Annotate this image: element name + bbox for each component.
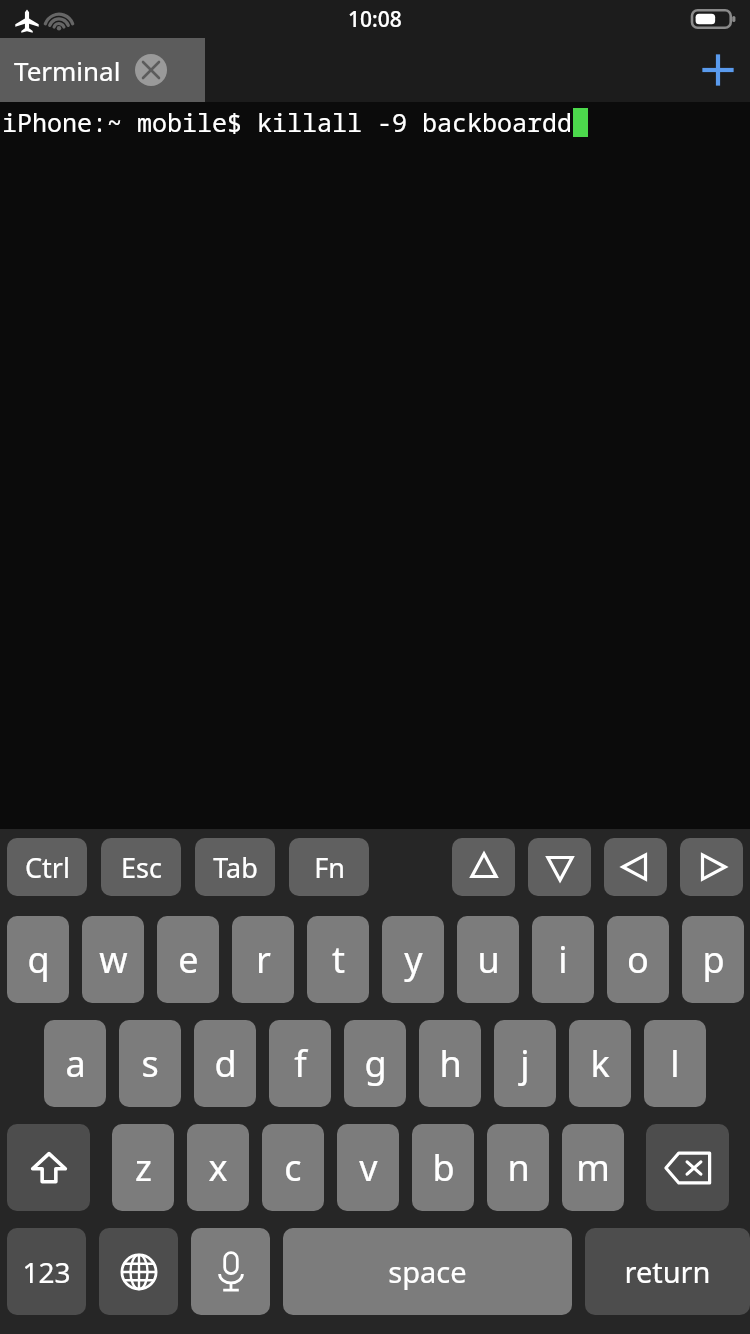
button[interactable]: m (562, 1124, 624, 1211)
staticText: iPhone:~ mobile$ killall -9 backboardd (2, 105, 573, 139)
button[interactable]: r (232, 916, 294, 1003)
button[interactable]: d (194, 1020, 256, 1107)
button[interactable]: New tab (686, 38, 750, 102)
staticText: s (141, 1039, 159, 1088)
staticText: p (702, 935, 725, 984)
button[interactable]: a (44, 1020, 106, 1107)
staticText: y (404, 935, 423, 984)
staticText: m (576, 1143, 610, 1192)
staticText: a (65, 1039, 86, 1088)
button[interactable]: l (644, 1020, 706, 1107)
button[interactable]: Dictation (191, 1228, 270, 1315)
button[interactable]: i (532, 916, 594, 1003)
button[interactable]: Arrow left (604, 838, 667, 896)
button[interactable]: w (82, 916, 144, 1003)
button[interactable]: y (382, 916, 444, 1003)
button[interactable]: Switch keyboard (99, 1228, 178, 1315)
button[interactable]: h (419, 1020, 481, 1107)
button[interactable]: 123 (7, 1228, 86, 1315)
staticText: u (477, 935, 500, 984)
staticText: d (214, 1039, 237, 1088)
button[interactable]: x (187, 1124, 249, 1211)
staticText: v (359, 1143, 378, 1192)
staticText: i (558, 935, 568, 984)
button[interactable]: return (585, 1228, 750, 1315)
staticText: r (256, 935, 271, 984)
button[interactable]: g (344, 1020, 406, 1107)
staticText: Fn (314, 849, 345, 886)
button[interactable]: v (337, 1124, 399, 1211)
button[interactable]: Esc (101, 838, 181, 896)
button[interactable]: Terminal (0, 38, 205, 102)
button[interactable]: Fn (289, 838, 369, 896)
staticText: k (590, 1039, 610, 1088)
button[interactable]: Tab (195, 838, 275, 896)
button[interactable]: k (569, 1020, 631, 1107)
button[interactable]: p (682, 916, 744, 1003)
staticText: l (670, 1039, 680, 1088)
button[interactable]: Arrow up (452, 838, 515, 896)
button[interactable]: o (607, 916, 669, 1003)
button[interactable]: space (283, 1228, 572, 1315)
staticText: c (284, 1143, 302, 1192)
button[interactable]: s (119, 1020, 181, 1107)
staticText: j (520, 1039, 530, 1088)
button[interactable]: t (307, 916, 369, 1003)
button[interactable]: Arrow right (680, 838, 743, 896)
staticText: t (332, 935, 345, 984)
button[interactable]: Close tab (135, 54, 167, 86)
staticText: Ctrl (25, 849, 70, 886)
button[interactable]: c (262, 1124, 324, 1211)
button[interactable]: n (487, 1124, 549, 1211)
staticText: b (432, 1143, 455, 1192)
button[interactable]: j (494, 1020, 556, 1107)
staticText: z (135, 1143, 152, 1192)
button[interactable]: Backspace (646, 1124, 729, 1211)
staticText: n (507, 1143, 530, 1192)
staticText: o (627, 935, 649, 984)
staticText: q (27, 935, 50, 984)
staticText: 123 (22, 1253, 71, 1291)
staticText: e (178, 935, 199, 984)
button[interactable]: q (7, 916, 69, 1003)
staticText: Terminal (14, 53, 121, 88)
button[interactable]: Shift (7, 1124, 90, 1211)
button[interactable]: b (412, 1124, 474, 1211)
staticText: f (294, 1039, 307, 1088)
button[interactable]: u (457, 916, 519, 1003)
button[interactable]: f (269, 1020, 331, 1107)
button[interactable]: Arrow down (528, 838, 591, 896)
button[interactable]: Ctrl (7, 838, 87, 896)
staticText: 10:08 (348, 5, 402, 34)
staticText: Tab (213, 849, 258, 886)
button[interactable]: z (112, 1124, 174, 1211)
staticText: g (364, 1039, 387, 1088)
staticText: x (208, 1143, 228, 1192)
staticText: Esc (121, 849, 162, 886)
staticText: w (99, 935, 128, 984)
staticText: h (439, 1039, 462, 1088)
staticText: return (624, 1252, 711, 1291)
button[interactable]: e (157, 916, 219, 1003)
staticText: space (388, 1252, 467, 1291)
